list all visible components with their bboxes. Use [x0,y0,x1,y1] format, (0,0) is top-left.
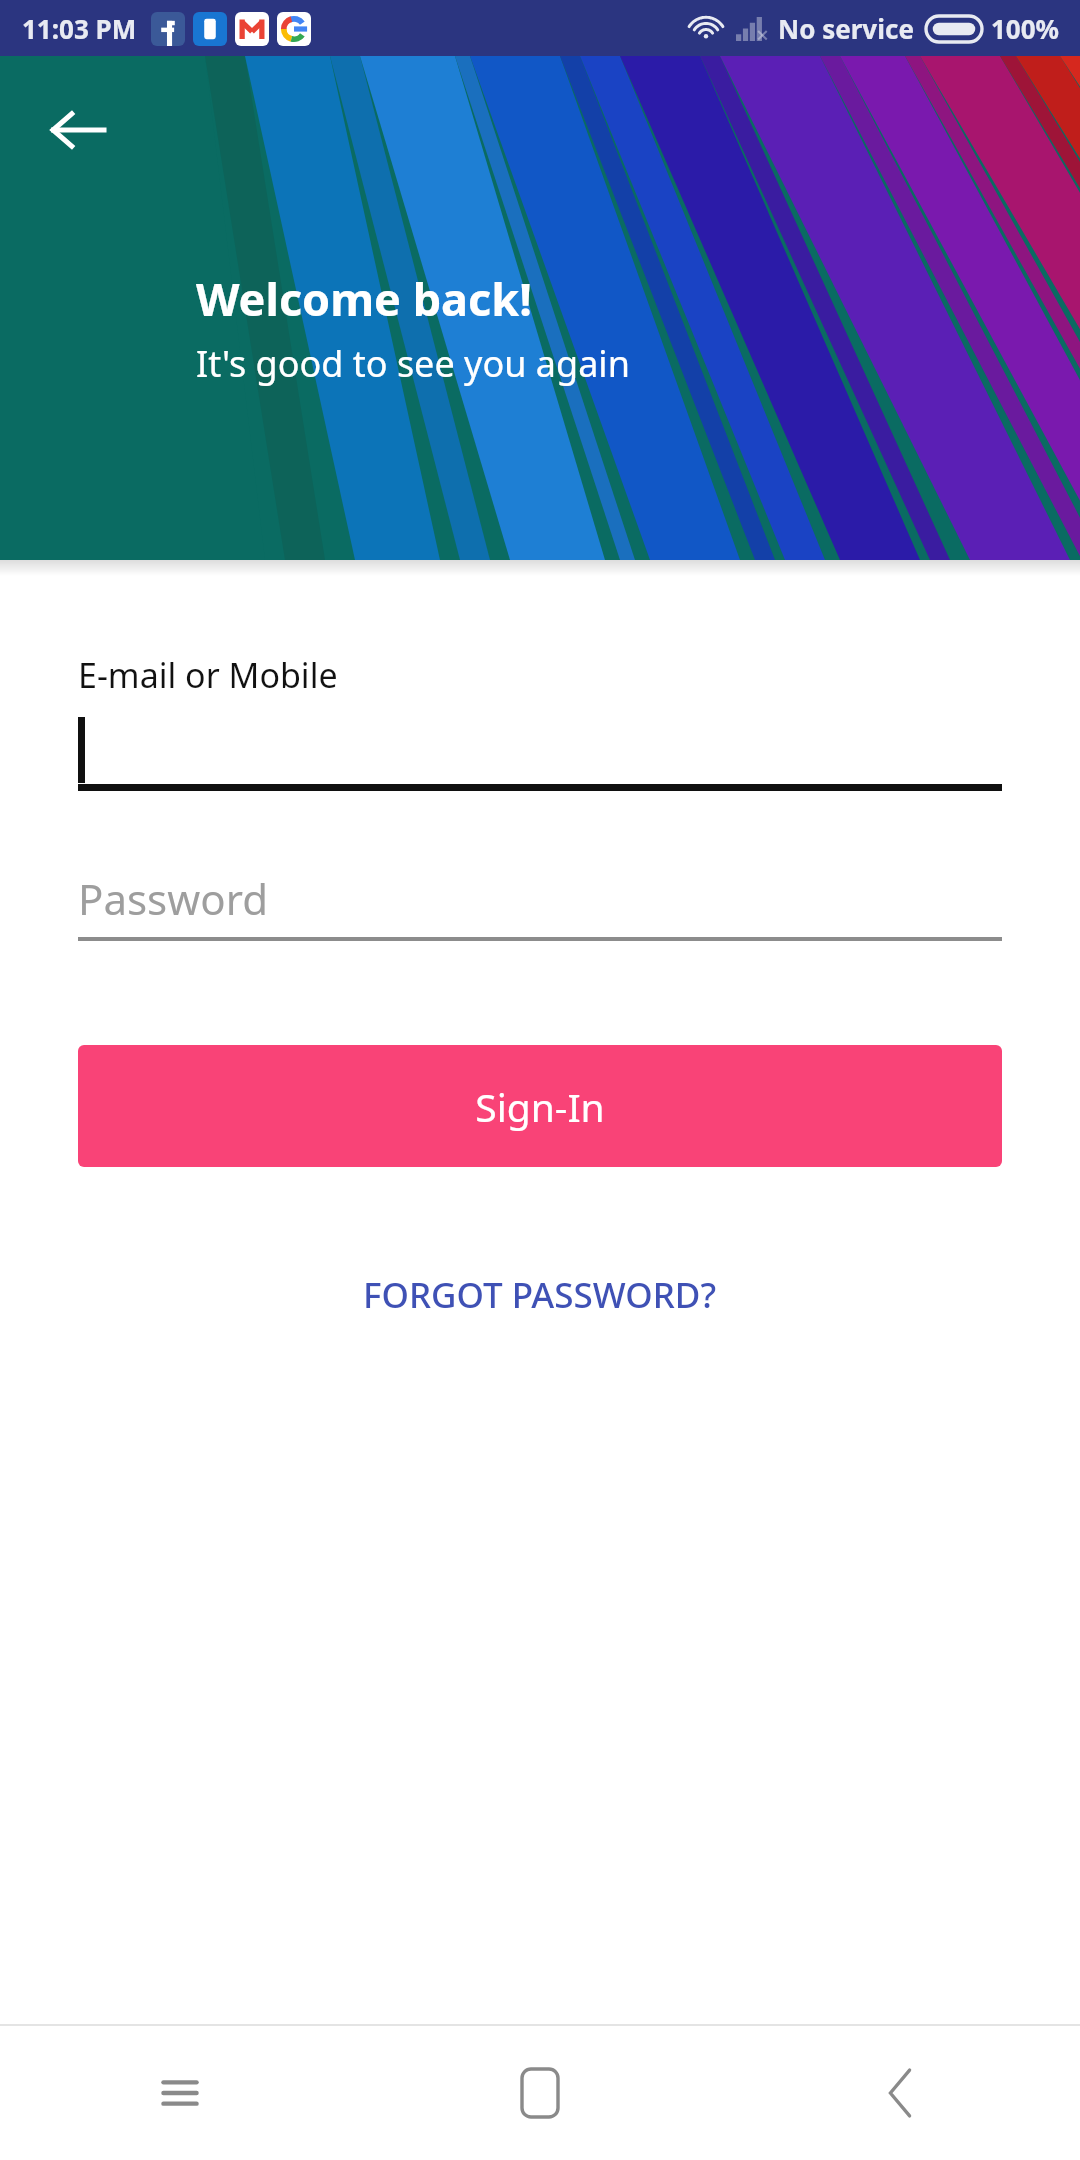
staticText: 11:03 PM [22,11,137,46]
staticText: Password [78,870,268,927]
button[interactable]: Back [720,2026,1080,2160]
staticText: Sign-In [475,1080,605,1133]
button[interactable]: Password [78,865,1002,941]
staticText: It's good to see you again [196,339,630,388]
button[interactable]: E-mail or Mobile [78,652,1002,791]
button[interactable]: Sign-In [78,1045,1002,1167]
button[interactable]: Home [360,2026,720,2160]
staticText: No service [778,11,914,46]
staticText: E-mail or Mobile [78,652,338,698]
button[interactable]: Back [34,86,122,174]
staticText: FORGOT PASSWORD? [363,1271,717,1319]
button[interactable]: Recent apps [0,2026,360,2160]
staticText: 100% [991,11,1060,46]
staticText: Welcome back! [196,268,532,329]
button[interactable]: FORGOT PASSWORD? [339,1257,741,1333]
